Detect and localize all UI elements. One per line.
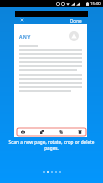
staticText: ANY [19,34,31,41]
staticText: 15:00 [90,1,101,7]
button[interactable]: Scan new page [20,129,26,135]
staticText: Done [70,18,82,24]
button[interactable]: Delete [77,129,83,135]
staticText: Scan a new page, rotate, crop or delete … [5,139,98,151]
button[interactable]: Rotate [39,129,45,135]
button[interactable]: Done [67,16,85,25]
button[interactable]: Crop [58,129,64,135]
button[interactable]: Close [18,16,26,24]
